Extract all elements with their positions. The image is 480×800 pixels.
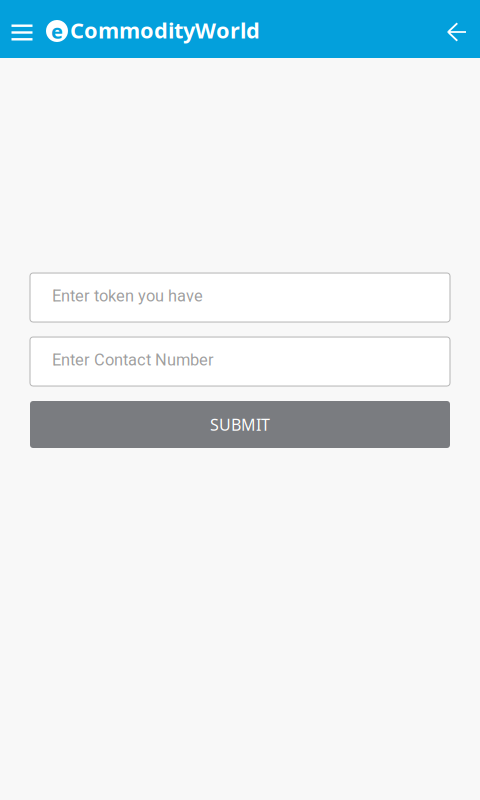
button[interactable]: Open navigation menu bbox=[0, 0, 44, 58]
button[interactable]: SUBMIT bbox=[30, 401, 450, 448]
staticText: SUBMIT bbox=[210, 414, 270, 435]
staticText: e bbox=[51, 17, 63, 45]
staticText: Enter Contact Number bbox=[52, 350, 214, 370]
staticText: Enter token you have bbox=[52, 286, 203, 306]
staticText: CommodityWorld bbox=[70, 15, 260, 45]
button[interactable]: Back bbox=[434, 0, 480, 58]
